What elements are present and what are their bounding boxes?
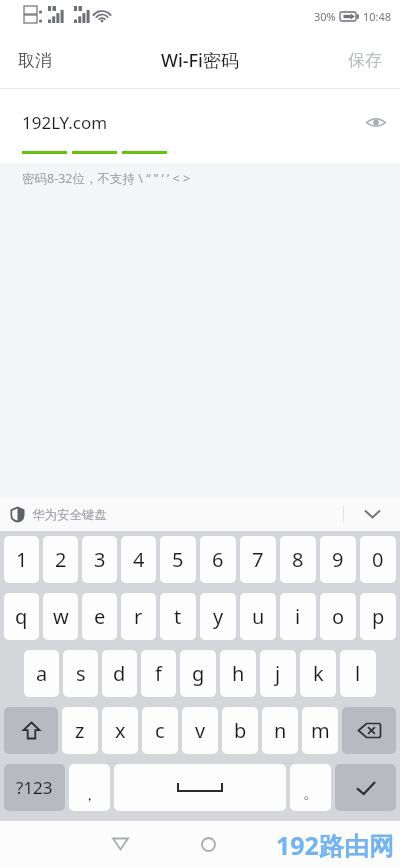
button[interactable]: Enter [335, 764, 396, 811]
staticText: x [115, 717, 126, 744]
staticText: i [295, 603, 301, 630]
button[interactable]: 0 [360, 536, 396, 583]
button[interactable]: c [142, 707, 178, 754]
staticText: c [155, 717, 165, 744]
button[interactable]: 保存 [330, 32, 400, 88]
button[interactable]: Space [114, 764, 286, 811]
staticText: Wi-Fi密码 [161, 48, 239, 73]
staticText: m [311, 717, 330, 744]
staticText: 保存 [348, 50, 382, 71]
button[interactable]: s [63, 650, 98, 697]
button[interactable]: v [182, 707, 218, 754]
staticText: l [355, 660, 361, 687]
button[interactable]: n [262, 707, 298, 754]
staticText: 10:48 [363, 9, 392, 24]
staticText: u [252, 603, 265, 630]
button[interactable]: 6 [200, 536, 236, 583]
button[interactable]: p [360, 593, 396, 640]
button[interactable]: 1 [4, 536, 39, 583]
button[interactable]: q [4, 593, 39, 640]
staticText: a [36, 660, 48, 687]
button[interactable]: f [141, 650, 176, 697]
staticText: d [113, 660, 126, 687]
button[interactable]: 。 [290, 764, 331, 811]
button[interactable]: y [200, 593, 236, 640]
staticText: 0 [372, 546, 384, 573]
staticText: 取消 [18, 50, 52, 71]
staticText: 密码8-32位，不支持 \ “ ” ‘ ’ < > [22, 170, 191, 187]
button[interactable]: u [240, 593, 276, 640]
button[interactable]: w [43, 593, 78, 640]
button[interactable]: k [300, 650, 336, 697]
staticText: 9 [332, 546, 344, 573]
button[interactable]: z [62, 707, 98, 754]
button[interactable]: a [24, 650, 59, 697]
staticText: 7 [252, 546, 264, 573]
staticText: p [372, 603, 385, 630]
staticText: s [76, 660, 86, 687]
button[interactable]: Backspace [342, 707, 396, 754]
button[interactable]: o [320, 593, 356, 640]
button[interactable]: 7 [240, 536, 276, 583]
button[interactable]: 4 [121, 536, 156, 583]
button[interactable]: 9 [320, 536, 356, 583]
button[interactable]: Back [98, 822, 142, 866]
staticText: r [134, 603, 143, 630]
staticText: 1 [16, 546, 28, 573]
button[interactable]: ?123 [4, 764, 65, 811]
staticText: 5 [172, 546, 184, 573]
staticText: 192LY.com [22, 111, 108, 134]
staticText: b [234, 717, 247, 744]
staticText: 2 [55, 546, 67, 573]
button[interactable]: Shift [4, 707, 58, 754]
staticText: f [155, 660, 162, 687]
button[interactable]: 8 [280, 536, 316, 583]
button[interactable]: e [82, 593, 117, 640]
staticText: n [274, 717, 287, 744]
button[interactable]: Show password [352, 98, 400, 146]
staticText: 6 [212, 546, 224, 573]
staticText: t [174, 603, 182, 630]
staticText: ?123 [16, 776, 53, 799]
staticText: v [195, 717, 206, 744]
staticText: w [53, 603, 69, 630]
button[interactable]: x [102, 707, 138, 754]
button[interactable]: Hide keyboard [344, 497, 400, 531]
staticText: g [192, 660, 205, 687]
button[interactable]: 取消 [0, 32, 70, 88]
staticText: q [15, 603, 28, 630]
button[interactable]: i [280, 593, 316, 640]
button[interactable]: Home [186, 822, 230, 866]
staticText: o [332, 603, 345, 630]
button[interactable]: d [102, 650, 137, 697]
button[interactable]: b [222, 707, 258, 754]
button[interactable]: g [180, 650, 216, 697]
staticText: 30% [314, 9, 336, 24]
button[interactable]: 2 [43, 536, 78, 583]
button[interactable]: h [220, 650, 256, 697]
staticText: z [75, 717, 85, 744]
staticText: 。 [303, 784, 318, 803]
button[interactable]: ， [69, 764, 110, 811]
button[interactable]: j [260, 650, 296, 697]
staticText: 华为安全键盘 [32, 507, 107, 523]
staticText: 8 [292, 546, 304, 573]
staticText: 192路由网 [276, 828, 394, 862]
staticText: e [94, 603, 106, 630]
button[interactable]: r [121, 593, 156, 640]
button[interactable]: t [160, 593, 196, 640]
button[interactable]: m [302, 707, 338, 754]
staticText: y [213, 603, 224, 630]
staticText: 3 [94, 546, 106, 573]
staticText: 4 [133, 546, 145, 573]
button[interactable]: 3 [82, 536, 117, 583]
staticText: ， [82, 786, 97, 805]
staticText: j [275, 660, 281, 687]
button[interactable]: 5 [160, 536, 196, 583]
button[interactable]: l [340, 650, 376, 697]
staticText: k [313, 660, 324, 687]
staticText: h [232, 660, 245, 687]
